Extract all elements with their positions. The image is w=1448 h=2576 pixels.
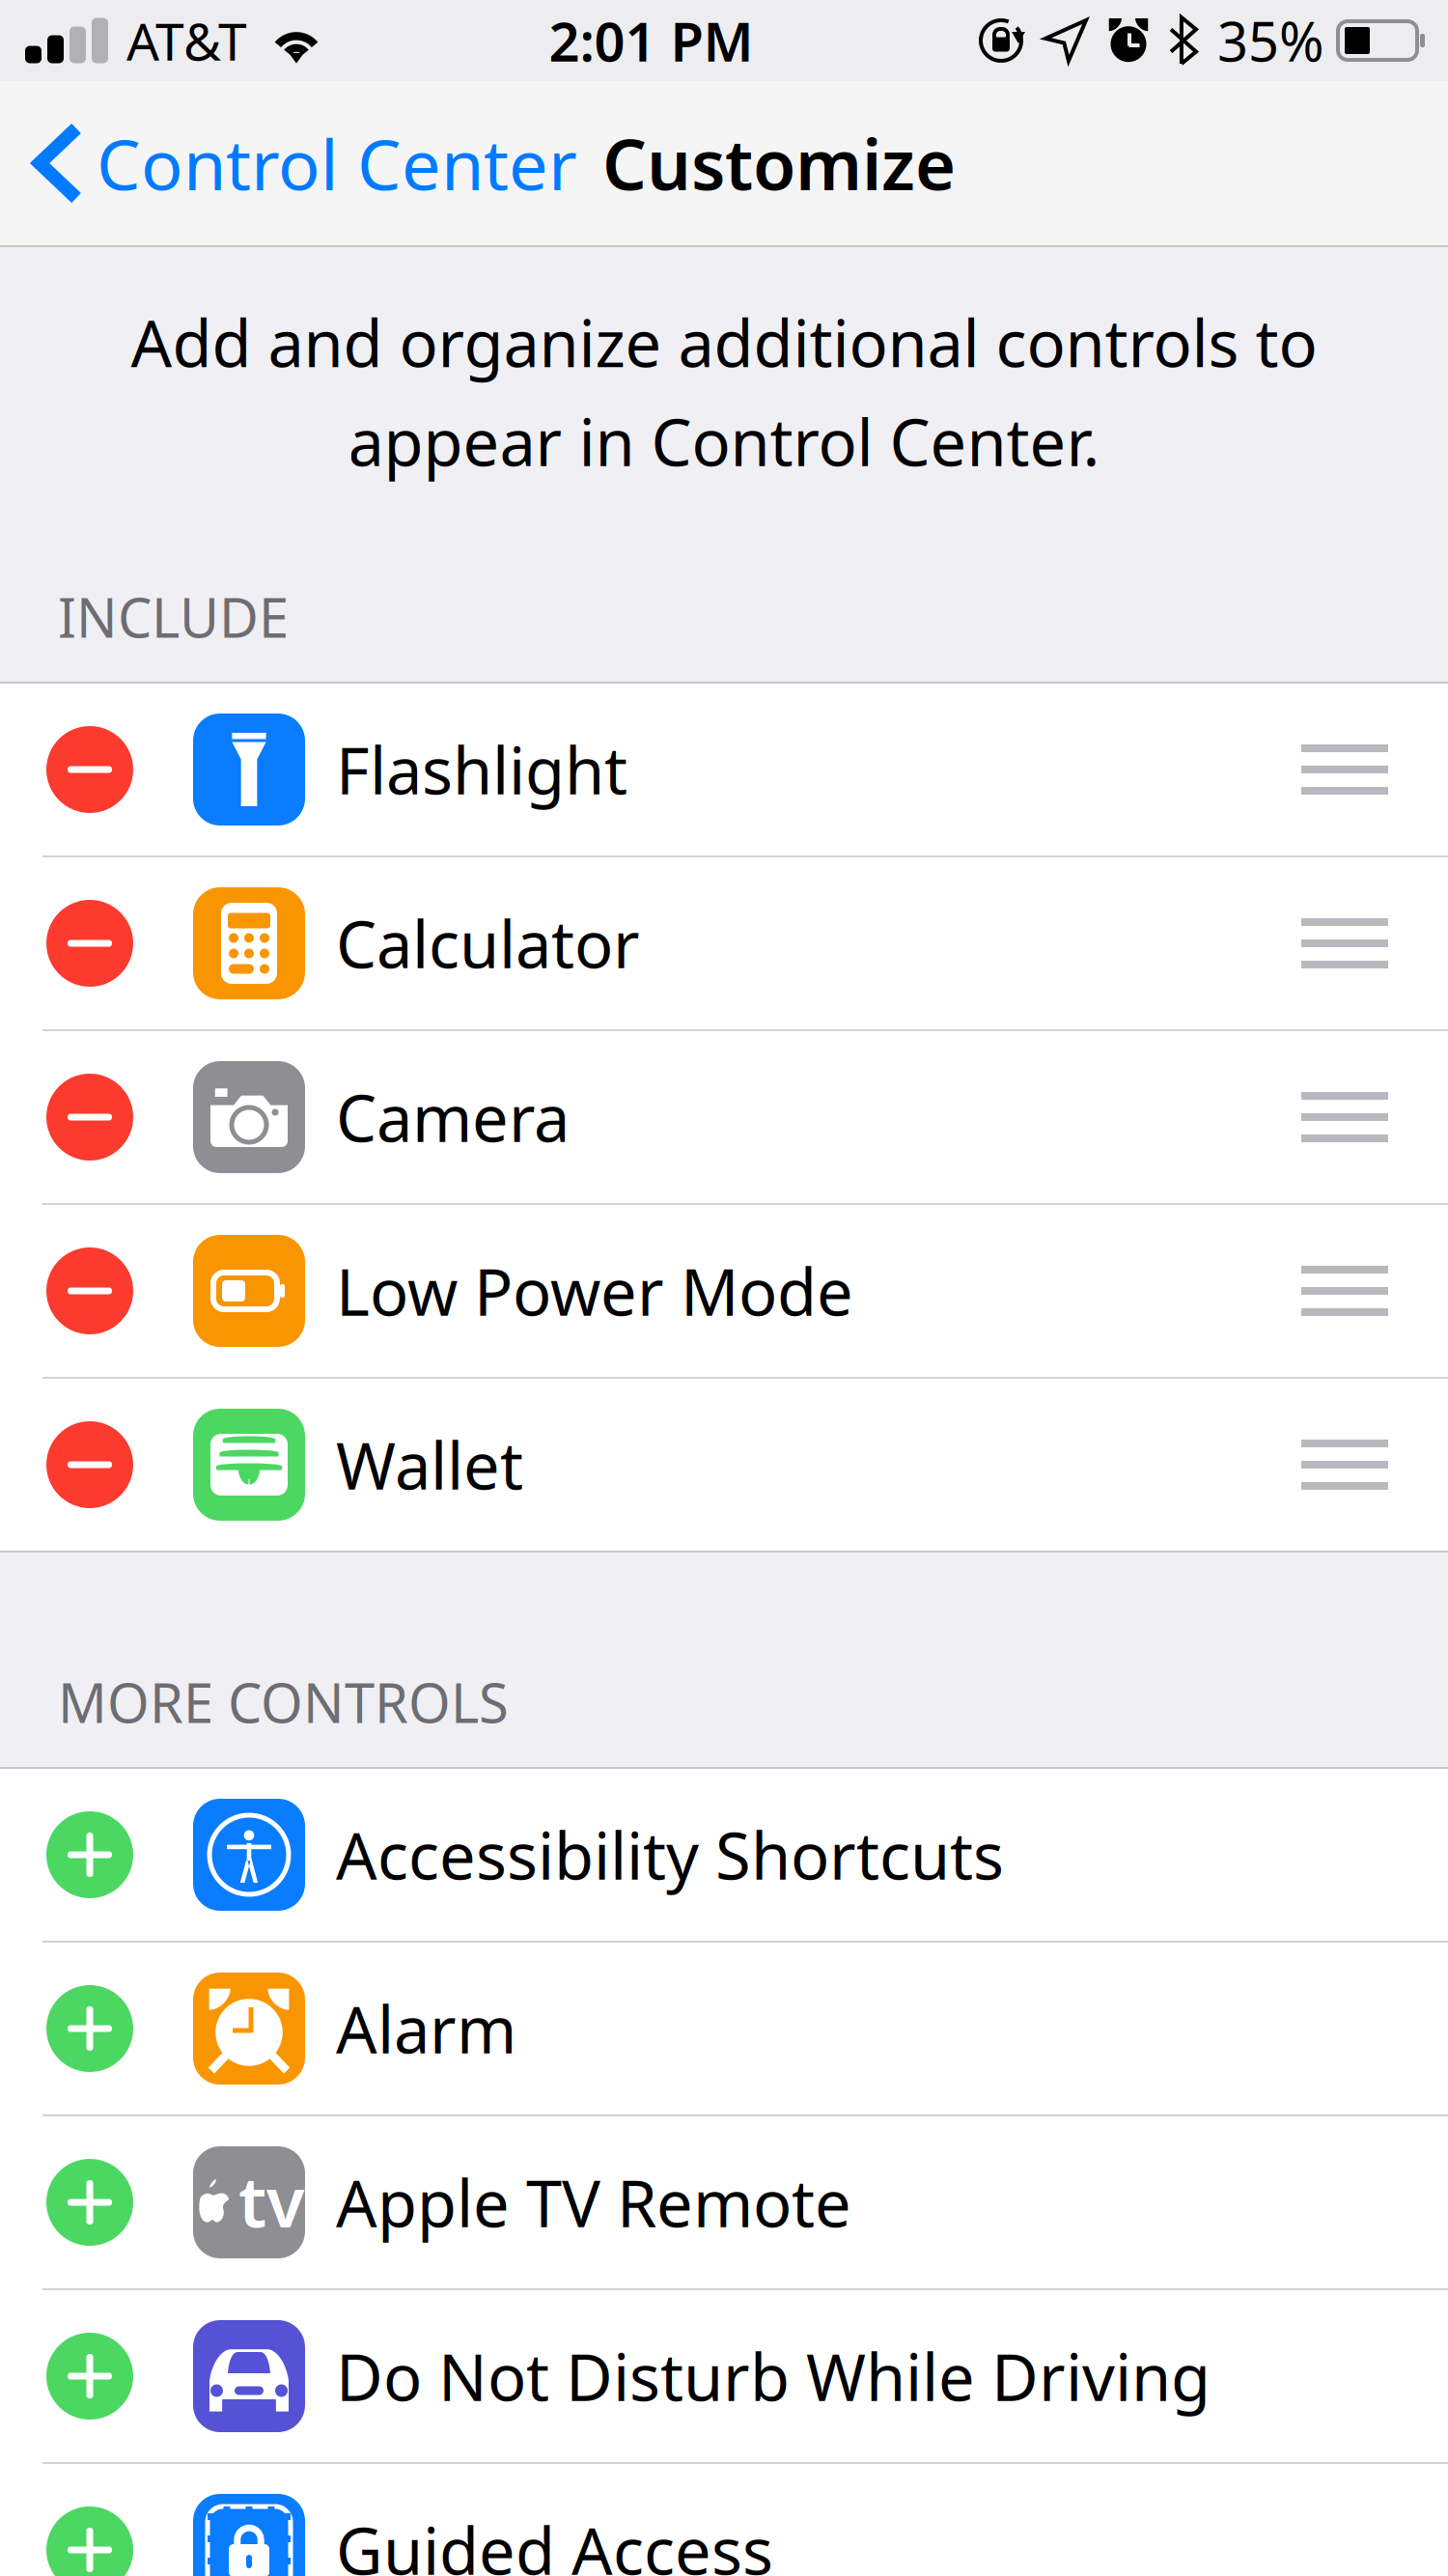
staticText: Flashlight: [336, 727, 627, 812]
staticText: INCLUDE: [58, 581, 289, 653]
staticText: Add and organize additional controls to: [131, 299, 1317, 385]
button[interactable]: Flashlight: [0, 684, 1448, 855]
staticText: Accessibility Shortcuts: [336, 1812, 1004, 1897]
staticText: Alarm: [336, 1986, 516, 2071]
staticText: 2:01 PM: [549, 5, 753, 76]
button[interactable]: Wallet: [0, 1379, 1448, 1551]
staticText: Guided Access: [336, 2507, 773, 2576]
staticText: Low Power Mode: [336, 1248, 853, 1334]
button[interactable]: Accessibility Shortcuts: [0, 1769, 1448, 1941]
staticText: Customize: [602, 117, 956, 209]
staticText: MORE CONTROLS: [58, 1666, 509, 1738]
button[interactable]: Low Power Mode: [0, 1205, 1448, 1377]
button[interactable]: Do Not Disturb While Driving: [0, 2290, 1448, 2462]
staticText: AT&T: [126, 6, 247, 75]
staticText: Calculator: [336, 901, 640, 986]
staticText: 35%: [1217, 5, 1324, 76]
staticText: Camera: [336, 1074, 570, 1160]
staticText: tv: [238, 2154, 304, 2247]
staticText: appear in Control Center.: [348, 398, 1100, 484]
staticText: Control Center: [97, 117, 577, 209]
button[interactable]: Alarm: [0, 1943, 1448, 2114]
button[interactable]: Camera: [0, 1031, 1448, 1203]
staticText: Do Not Disturb While Driving: [336, 2333, 1211, 2419]
button[interactable]: Guided Access: [0, 2464, 1448, 2576]
button[interactable]: Control Center: [0, 81, 577, 245]
staticText: Wallet: [336, 1422, 523, 1507]
button[interactable]: tv: [0, 2116, 1448, 2288]
button[interactable]: Calculator: [0, 857, 1448, 1029]
staticText: Apple TV Remote: [336, 2160, 851, 2245]
